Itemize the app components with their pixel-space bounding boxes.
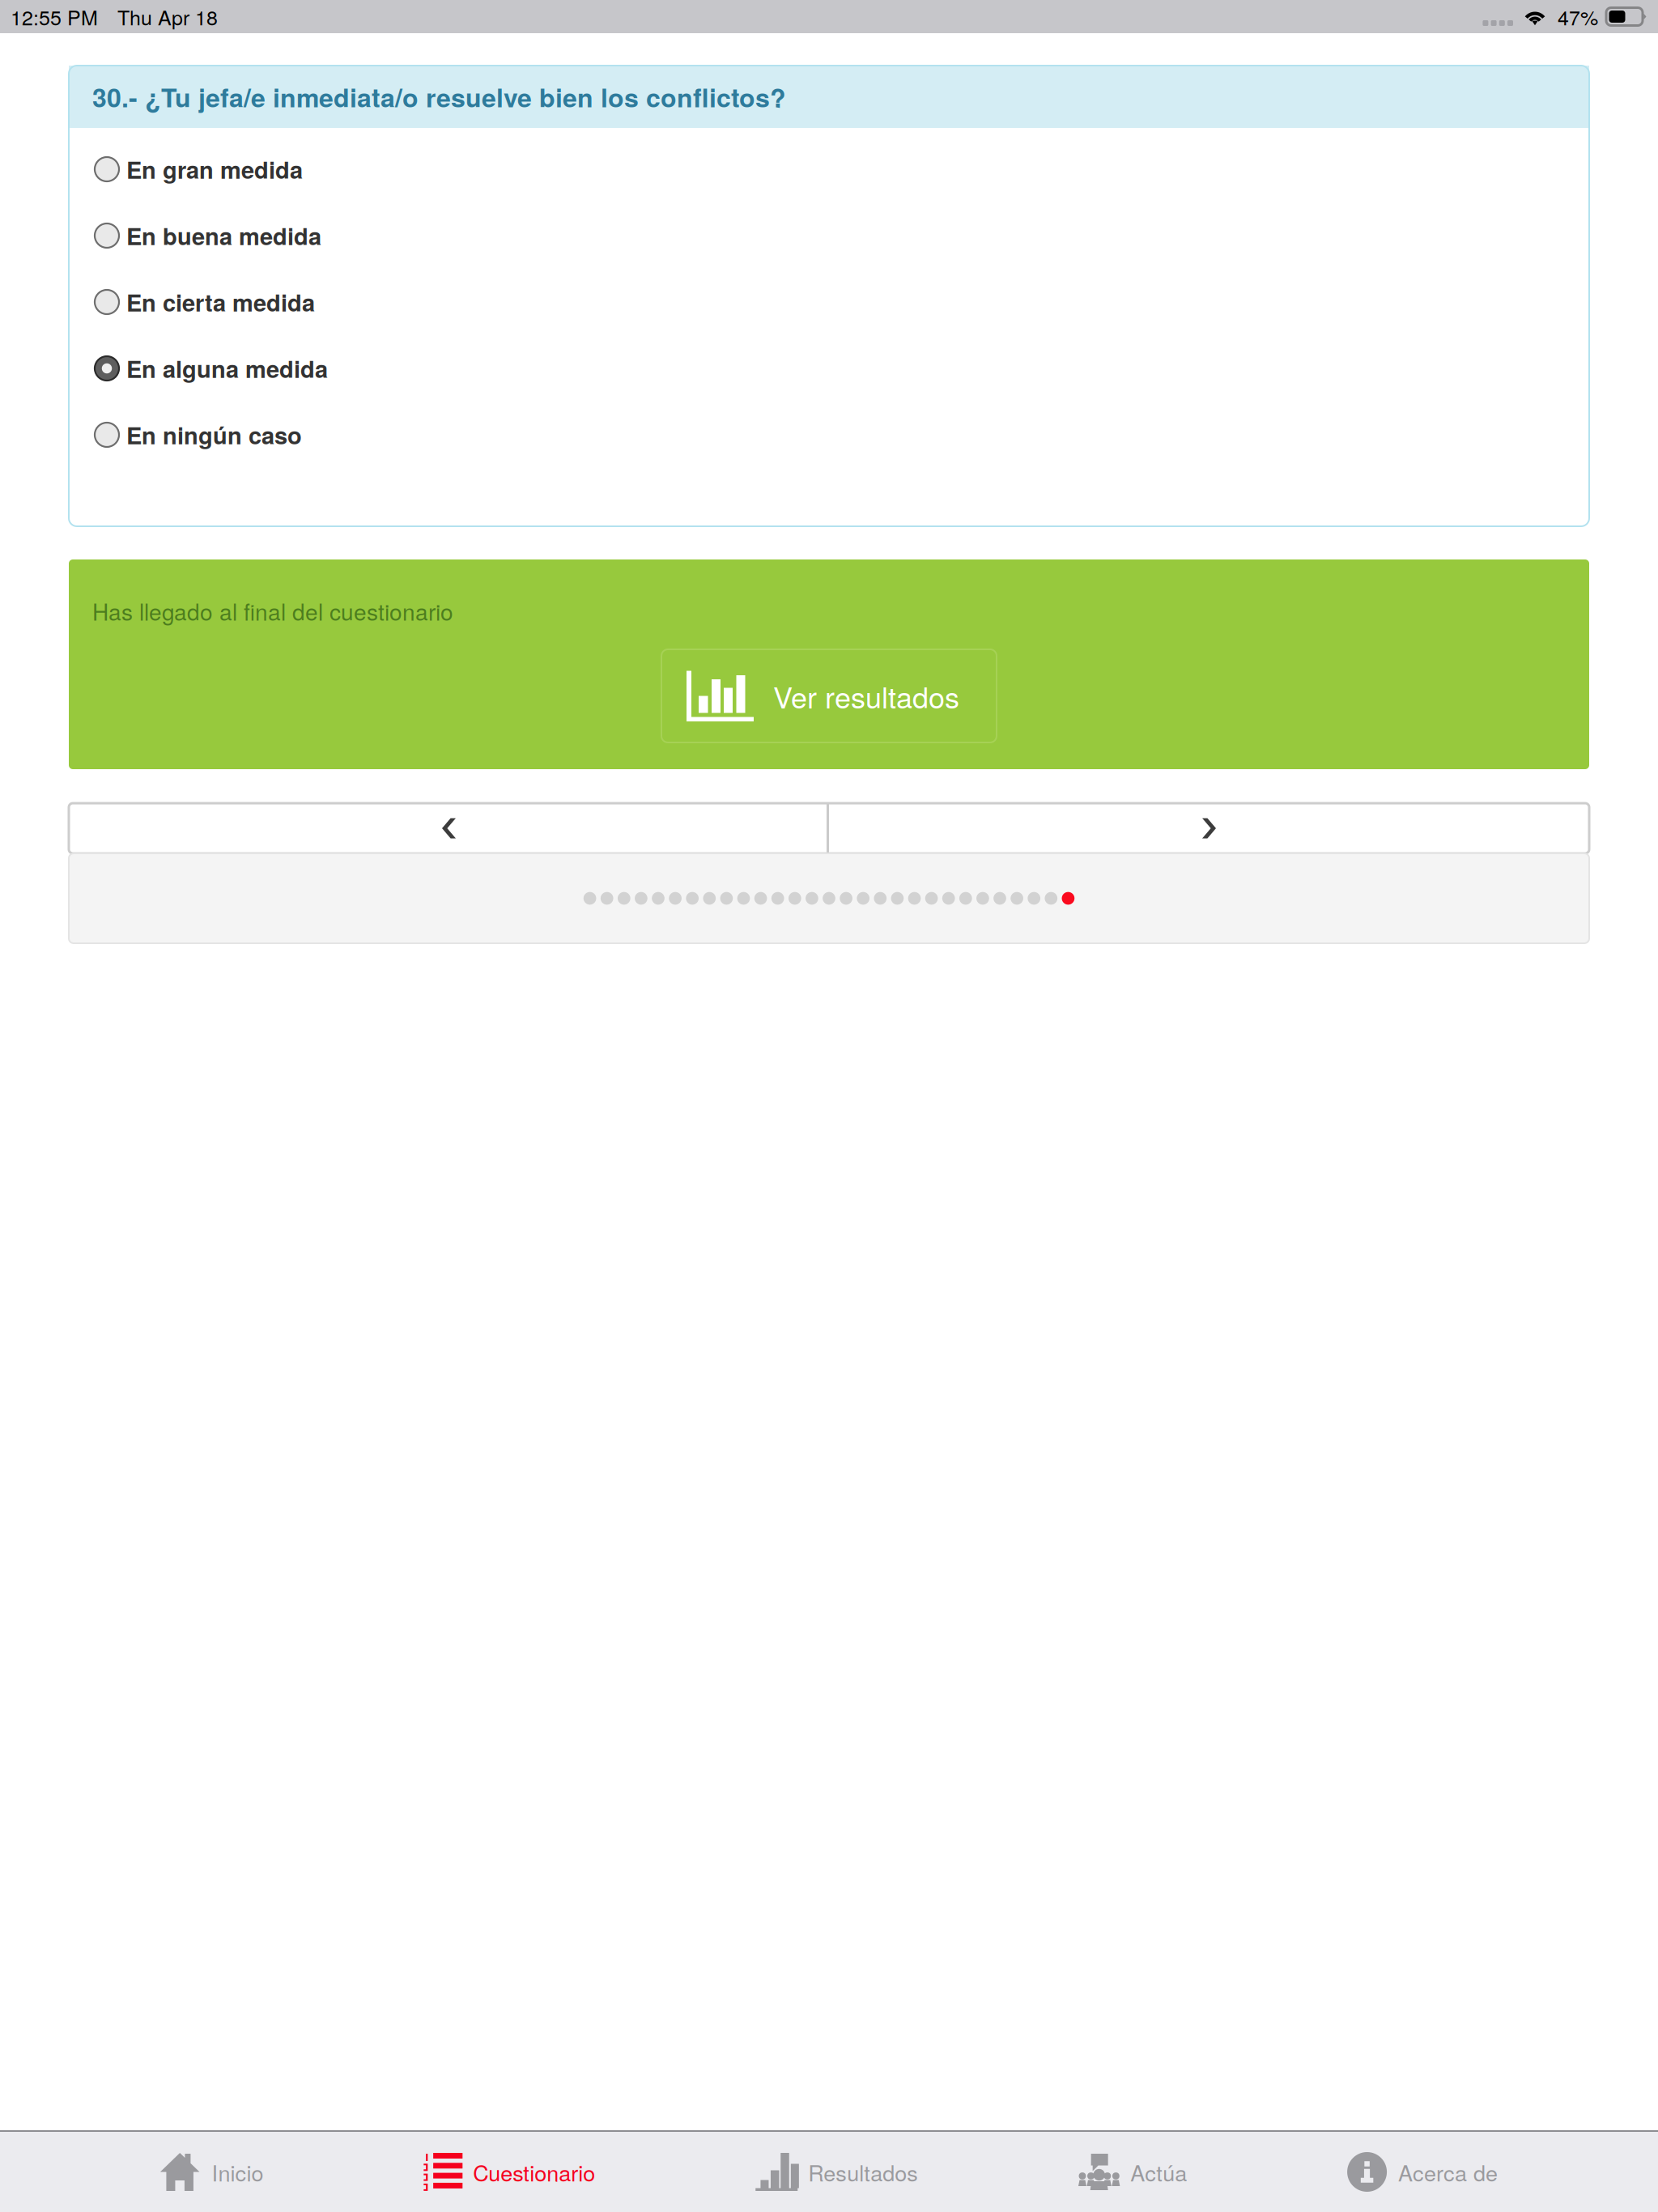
button[interactable]: Actúa xyxy=(1079,2131,1187,2212)
staticText: En cierta medida xyxy=(126,285,315,319)
button[interactable]: Cuestionario xyxy=(424,2131,595,2212)
button[interactable]: Ver resultados xyxy=(661,649,997,742)
staticText: Cuestionario xyxy=(473,2156,595,2188)
button[interactable]: Siguiente xyxy=(829,803,1589,853)
button[interactable]: En gran medida xyxy=(95,141,1589,198)
staticText: En alguna medida xyxy=(126,352,328,385)
button[interactable]: Resultados xyxy=(755,2131,918,2212)
staticText: Thu Apr 18 xyxy=(117,2,218,31)
button[interactable]: Inicio xyxy=(160,2131,263,2212)
button[interactable]: En buena medida xyxy=(95,207,1589,264)
staticText: Acerca de xyxy=(1398,2156,1498,2188)
staticText: 30.- ¿Tu jefa/e inmediata/o resuelve bie… xyxy=(92,78,786,115)
staticText: Actúa xyxy=(1130,2156,1187,2188)
button[interactable]: Anterior xyxy=(69,803,829,853)
button[interactable]: En cierta medida xyxy=(95,274,1589,330)
staticText: En gran medida xyxy=(126,152,303,186)
staticText: Resultados xyxy=(808,2156,918,2188)
staticText: Inicio xyxy=(212,2156,263,2188)
button[interactable]: En alguna medida xyxy=(95,340,1589,397)
staticText: En buena medida xyxy=(126,219,321,252)
staticText: 12:55 PM xyxy=(11,2,98,31)
staticText: Ver resultados xyxy=(773,675,959,717)
button[interactable]: En ningún caso xyxy=(95,406,1589,463)
staticText: En ningún caso xyxy=(126,418,302,452)
staticText: Has llegado al final del cuestionario xyxy=(92,595,453,627)
button[interactable]: Acerca de xyxy=(1347,2131,1498,2212)
staticText: 47% xyxy=(1558,2,1598,31)
